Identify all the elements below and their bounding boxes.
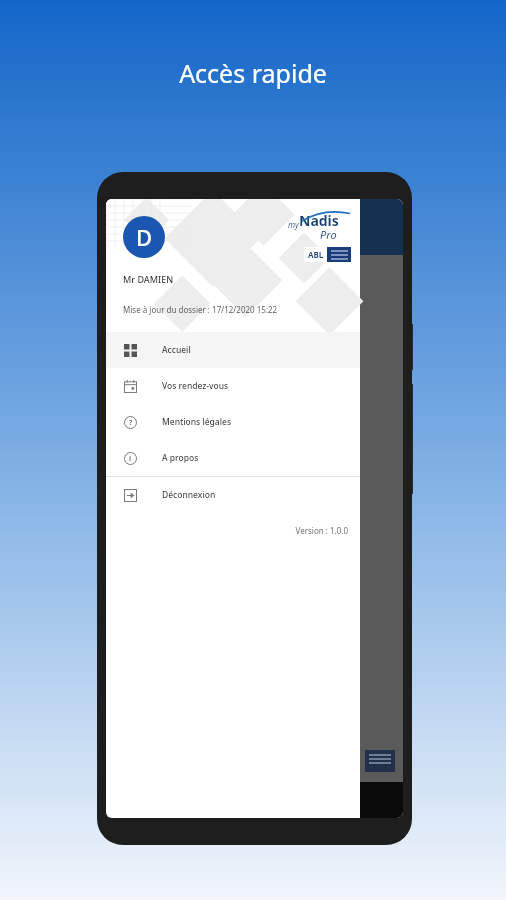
staticText: ?	[129, 418, 133, 428]
staticText: Version : 1.0.0	[106, 525, 348, 536]
staticText: Mise à jour du dossier : 17/12/2020 15:2…	[123, 304, 278, 315]
staticText: Accès rapide	[0, 56, 506, 90]
button[interactable]: Accueil	[106, 332, 360, 368]
staticText: Mentions légales	[162, 416, 232, 428]
staticText: D	[136, 222, 153, 252]
staticText: my	[288, 219, 299, 230]
staticText: A propos	[162, 452, 199, 464]
button[interactable]: Déconnexion	[106, 477, 360, 513]
staticText: Pro	[320, 227, 337, 242]
staticText: Accueil	[162, 344, 191, 356]
staticText: Vos rendez-vous	[162, 380, 229, 392]
button[interactable]: i	[106, 440, 360, 476]
staticText: ABL	[308, 249, 324, 260]
button[interactable]: ?	[106, 404, 360, 440]
button[interactable]: Vos rendez-vous	[106, 368, 360, 404]
staticText: Mr DAMIEN	[123, 273, 174, 285]
staticText: Déconnexion	[162, 489, 216, 501]
staticText: Nadis	[299, 211, 339, 230]
staticText: i	[129, 454, 132, 464]
